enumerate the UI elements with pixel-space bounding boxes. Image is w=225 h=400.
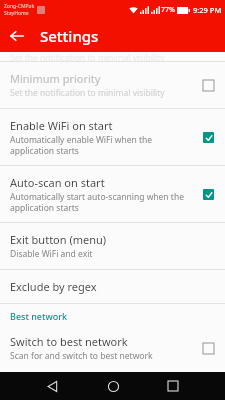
button[interactable] [195,181,221,207]
button[interactable]: Auto-scan on start [0,166,225,222]
button[interactable]: Set the notification to minimal visibili… [0,52,225,61]
staticText: Switch to best network [10,334,128,349]
button[interactable]: Home [101,374,125,398]
staticText: Minimum priority [10,71,101,86]
button[interactable]: Enable WiFi on start [0,109,225,165]
button[interactable] [195,124,221,150]
staticText: Zong-CMPak [4,3,35,10]
button[interactable] [195,72,221,98]
button[interactable]: Exclude by regex [0,270,225,303]
staticText: 9:29 PM [193,5,222,15]
staticText: Enable WiFi on start [10,118,113,133]
button[interactable] [195,335,221,361]
button[interactable]: Recents [161,374,185,398]
button[interactable]: Minimum priority [0,62,225,108]
staticText: Exit button (menu) [10,232,107,247]
staticText: StayHome [4,10,29,17]
staticText: 77% [161,5,175,15]
button[interactable]: Back [40,374,64,398]
button[interactable]: Switch to best network [0,325,225,371]
staticText: Exclude by regex [10,279,97,294]
staticText: Scan for and switch to best network [10,350,153,362]
staticText: Auto-scan on start [10,175,105,190]
staticText: Set the notification to minimal visibili… [10,87,165,99]
staticText: Automatically enable WiFi when the appli… [10,134,191,156]
staticText: Automatically start auto-scanning when t… [10,191,191,213]
button[interactable]: Back [4,23,30,49]
staticText: Settings [40,26,99,46]
staticText: Disable WiFi and exit [10,248,93,260]
staticText: Best network [10,310,68,322]
button[interactable]: Exit button (menu) [0,223,225,269]
staticText: Set the notification to minimal visibili… [10,52,165,61]
